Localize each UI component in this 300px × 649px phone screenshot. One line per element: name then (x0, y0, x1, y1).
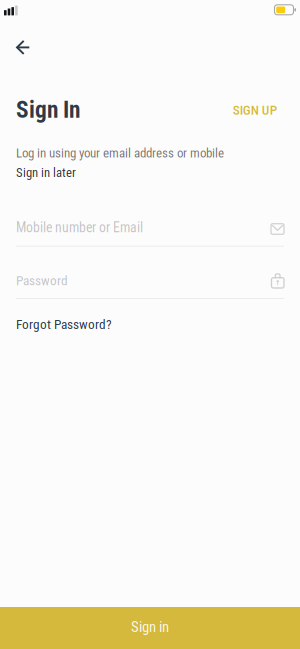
staticText: Sign in (131, 618, 169, 636)
button[interactable]: Forgot Password? (16, 313, 122, 336)
button[interactable]: Password (16, 273, 284, 299)
button[interactable]: Back (0, 27, 46, 67)
staticText: Log in using your email address or mobil… (16, 146, 224, 161)
button[interactable]: Sign in later (16, 162, 86, 183)
staticText: Forgot Password? (16, 317, 112, 332)
staticText: Password (16, 273, 68, 288)
staticText: Sign In (16, 96, 80, 123)
staticText: Mobile number or Email (16, 219, 143, 236)
staticText: SIGN UP (233, 102, 277, 118)
button[interactable]: SIGN UP (223, 95, 287, 125)
button[interactable]: Mobile number or Email (16, 219, 284, 247)
button[interactable]: Sign in (0, 607, 300, 649)
staticText: Sign in later (16, 165, 76, 180)
